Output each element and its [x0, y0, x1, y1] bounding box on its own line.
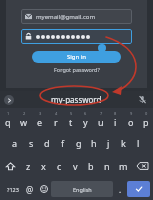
button[interactable]: l	[131, 131, 146, 154]
staticText: q	[5, 116, 11, 128]
button[interactable]: 9	[123, 108, 138, 131]
staticText: 6	[84, 111, 87, 116]
staticText: y	[83, 116, 88, 128]
staticText: 0	[145, 111, 148, 116]
button[interactable]: Enter	[127, 181, 150, 197]
button[interactable]: c	[51, 154, 67, 178]
staticText: @	[26, 184, 34, 195]
staticText: v	[73, 160, 78, 172]
staticText: f	[61, 137, 65, 149]
staticText: Sign in	[67, 53, 87, 61]
staticText: s	[29, 137, 34, 149]
button[interactable]: h	[86, 131, 101, 154]
staticText: ?123	[7, 186, 19, 193]
staticText: n	[104, 160, 110, 172]
staticText: e	[37, 116, 43, 128]
staticText: m	[119, 160, 128, 172]
staticText: English	[73, 186, 92, 193]
staticText: 9	[130, 111, 133, 116]
staticText: l	[137, 137, 140, 149]
button[interactable]: 7	[93, 108, 108, 131]
button[interactable]: Emoji	[37, 178, 51, 200]
staticText: i	[114, 116, 117, 128]
button[interactable]: 2	[16, 108, 32, 131]
staticText: 5	[70, 111, 73, 116]
button[interactable]: 5	[63, 108, 78, 131]
button[interactable]: my-password	[51, 94, 102, 105]
button[interactable]: myemail@gmail.com	[21, 9, 132, 24]
button[interactable]: Forgot password?	[54, 66, 100, 73]
button[interactable]: Backspace	[131, 154, 153, 178]
button[interactable]: English	[51, 181, 113, 197]
button[interactable]: v	[67, 154, 83, 178]
button[interactable]: 6	[78, 108, 93, 131]
button[interactable]: Shift	[0, 154, 21, 178]
button[interactable]: x	[36, 154, 51, 178]
button[interactable]: j	[101, 131, 116, 154]
button[interactable]: More suggestions	[4, 95, 14, 105]
button[interactable]: g	[71, 131, 86, 154]
staticText: .	[119, 184, 122, 195]
button[interactable]: 8	[108, 108, 123, 131]
button[interactable]: a	[7, 131, 23, 154]
button[interactable]: z	[21, 154, 36, 178]
button[interactable]: @	[23, 178, 37, 200]
staticText: 1	[7, 111, 10, 116]
button[interactable]: m	[115, 154, 131, 178]
staticText: o	[128, 116, 134, 128]
staticText: j	[107, 137, 110, 149]
button[interactable]: k	[116, 131, 131, 154]
staticText: 8	[114, 111, 117, 116]
button[interactable]: 1	[0, 108, 16, 131]
button[interactable]: Sign in	[32, 51, 121, 63]
button[interactable]: 0	[138, 108, 153, 131]
staticText: my-password	[51, 94, 102, 105]
button[interactable]: Voice input off	[138, 95, 147, 104]
button[interactable]: s	[23, 131, 39, 154]
staticText: 7	[100, 111, 103, 116]
staticText: u	[98, 116, 104, 128]
staticText: r	[54, 116, 58, 128]
button[interactable]: b	[83, 154, 99, 178]
staticText: a	[12, 137, 18, 149]
staticText: x	[41, 160, 46, 172]
button[interactable]: ?123	[3, 178, 23, 200]
button[interactable]: 3	[32, 108, 48, 131]
staticText: g	[76, 137, 82, 149]
staticText: k	[121, 137, 126, 149]
staticText: w	[20, 116, 28, 128]
button[interactable]	[21, 29, 132, 44]
button[interactable]: 4	[48, 108, 63, 131]
staticText: myemail@gmail.com	[36, 13, 96, 21]
staticText: d	[44, 137, 50, 149]
button[interactable]: f	[55, 131, 71, 154]
staticText: 4	[55, 111, 58, 116]
button[interactable]: d	[39, 131, 55, 154]
button[interactable]: n	[99, 154, 115, 178]
staticText: p	[143, 116, 149, 128]
staticText: Forgot password?	[54, 66, 100, 73]
staticText: 2	[23, 111, 26, 116]
staticText: c	[57, 160, 62, 172]
staticText: b	[88, 160, 94, 172]
staticText: t	[69, 116, 73, 128]
staticText: h	[91, 137, 97, 149]
button[interactable]: .	[113, 178, 127, 200]
staticText: 3	[39, 111, 42, 116]
staticText: z	[26, 160, 31, 172]
